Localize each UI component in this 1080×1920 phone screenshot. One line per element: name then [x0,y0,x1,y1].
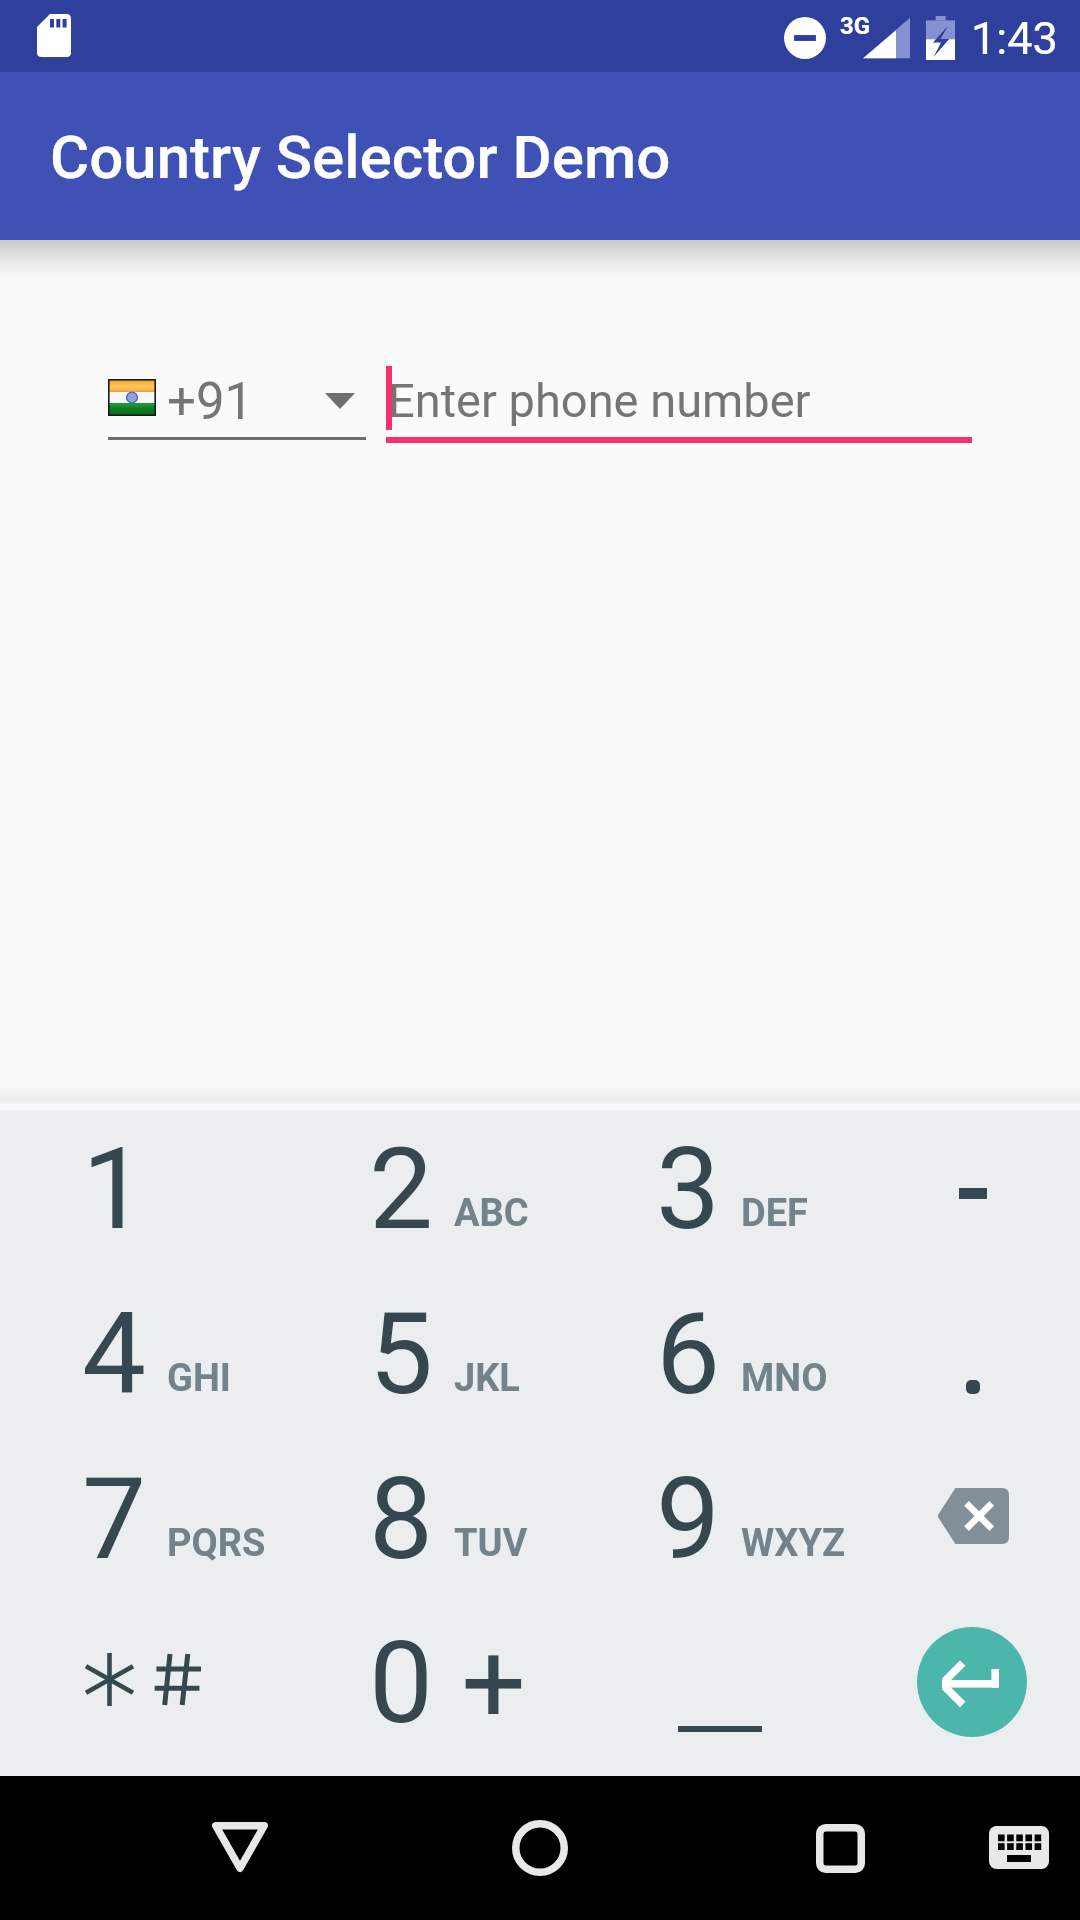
button[interactable]: +91 [108,360,366,442]
staticText: 7 [82,1452,147,1586]
button[interactable]: 9 WXYZ [540,1443,810,1610]
staticText: WXYZ [741,1521,845,1566]
staticText: 3G [840,12,871,40]
button[interactable]: 7 PQRS [0,1443,270,1610]
button[interactable]: 3 DEF [540,1109,810,1276]
button[interactable]: space [540,1609,810,1776]
button[interactable]: Enter [917,1627,1027,1737]
staticText: PQRS [167,1521,266,1566]
staticText: ABC [454,1191,529,1236]
staticText: TUV [454,1521,528,1566]
button[interactable]: 0 plus [270,1609,540,1776]
button[interactable]: dot [810,1276,1080,1443]
button[interactable]: 6 MNO [540,1276,810,1443]
button[interactable]: 8 TUV [270,1443,540,1610]
staticText: 6 [656,1287,721,1421]
staticText: Country Selector Demo [50,122,671,192]
staticText: 0 + [369,1616,527,1750]
staticText: 8 [369,1452,434,1586]
button[interactable]: Home [480,1788,600,1908]
staticText: 4 [82,1287,147,1421]
staticText: 9 [656,1452,721,1586]
staticText: JKL [454,1356,520,1401]
button[interactable]: 1 [0,1109,270,1276]
button[interactable]: Backspace [810,1443,1080,1610]
button[interactable]: dash [810,1109,1080,1276]
staticText: MNO [741,1356,828,1401]
button[interactable]: 5 JKL [270,1276,540,1443]
staticText: +91 [167,372,254,432]
button[interactable]: Keyboard [964,1792,1074,1902]
staticText: DEF [741,1191,808,1236]
staticText: GHI [167,1356,231,1401]
button[interactable]: 4 GHI [0,1276,270,1443]
staticText: 5 [369,1287,434,1421]
button[interactable]: Backspace [937,1488,1009,1544]
button[interactable]: Enter [810,1609,1080,1776]
staticText: 1:43 [971,12,1058,65]
button[interactable]: Recents [780,1788,900,1908]
button[interactable]: Back [180,1787,300,1907]
staticText: Enter phone number [388,373,811,428]
button[interactable]: star hash [0,1609,270,1776]
staticText: 3 [656,1122,721,1256]
button[interactable]: Enter phone number [386,360,972,442]
staticText: 1 [82,1122,147,1256]
button[interactable]: 2 ABC [270,1109,540,1276]
staticText: 2 [369,1122,434,1256]
